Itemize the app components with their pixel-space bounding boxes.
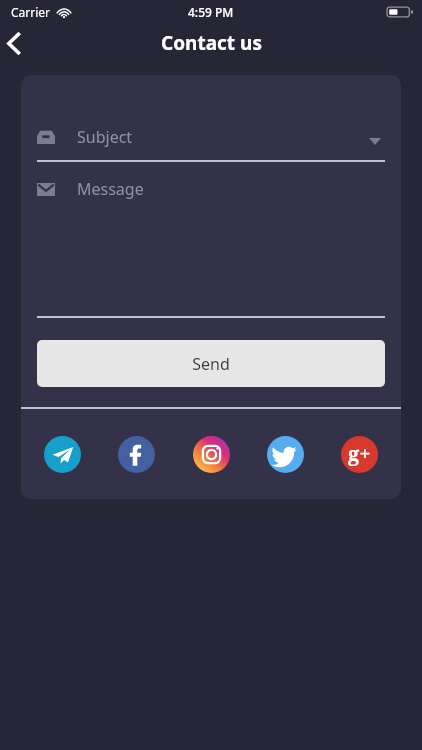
button[interactable]: Back	[0, 24, 44, 62]
button[interactable]: Send	[37, 340, 385, 387]
staticText: Carrier	[11, 4, 51, 20]
button[interactable]: Facebook	[118, 436, 155, 473]
button[interactable]: Subject	[21, 75, 401, 162]
staticText: Contact us	[161, 30, 262, 56]
staticText: g+	[348, 440, 371, 467]
staticText: Send	[192, 353, 230, 375]
staticText: 4:59 PM	[188, 4, 234, 20]
button[interactable]: Telegram	[44, 436, 81, 473]
staticText: Message	[77, 178, 144, 200]
staticText: Subject	[77, 126, 133, 148]
button[interactable]: Instagram	[193, 436, 230, 473]
button[interactable]: Twitter	[267, 436, 304, 473]
button[interactable]: Message	[21, 162, 401, 318]
button[interactable]: Google Plus	[341, 436, 378, 473]
